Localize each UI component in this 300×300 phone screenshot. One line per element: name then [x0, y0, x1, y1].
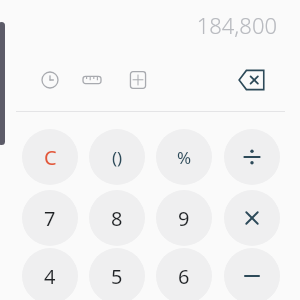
staticText: 5	[111, 263, 123, 290]
button[interactable]: 4	[22, 248, 78, 300]
button[interactable]: ()	[89, 129, 145, 185]
staticText: %	[177, 146, 192, 169]
staticText: 8	[111, 205, 123, 232]
staticText: 9	[178, 205, 190, 232]
button[interactable]: 7	[22, 190, 78, 246]
button[interactable]: %	[156, 129, 212, 185]
button[interactable]: C	[22, 129, 78, 185]
button[interactable]: Divide	[224, 129, 280, 185]
button[interactable]: Scientific calculator	[126, 68, 150, 92]
staticText: ()	[112, 146, 123, 169]
button[interactable]: History	[38, 68, 62, 92]
button[interactable]: 6	[156, 248, 212, 300]
button[interactable]: 5	[89, 248, 145, 300]
staticText: 4	[44, 263, 56, 290]
button[interactable]: 9	[156, 190, 212, 246]
staticText: 184,800	[196, 10, 277, 40]
button[interactable]: Multiply	[224, 190, 280, 246]
staticText: 7	[44, 205, 56, 232]
button[interactable]: Subtract	[224, 248, 280, 300]
staticText: 6	[178, 263, 190, 290]
button[interactable]: Unit converter	[80, 68, 104, 92]
staticText: C	[44, 144, 57, 171]
button[interactable]: 8	[89, 190, 145, 246]
button[interactable]: Backspace	[238, 68, 266, 92]
